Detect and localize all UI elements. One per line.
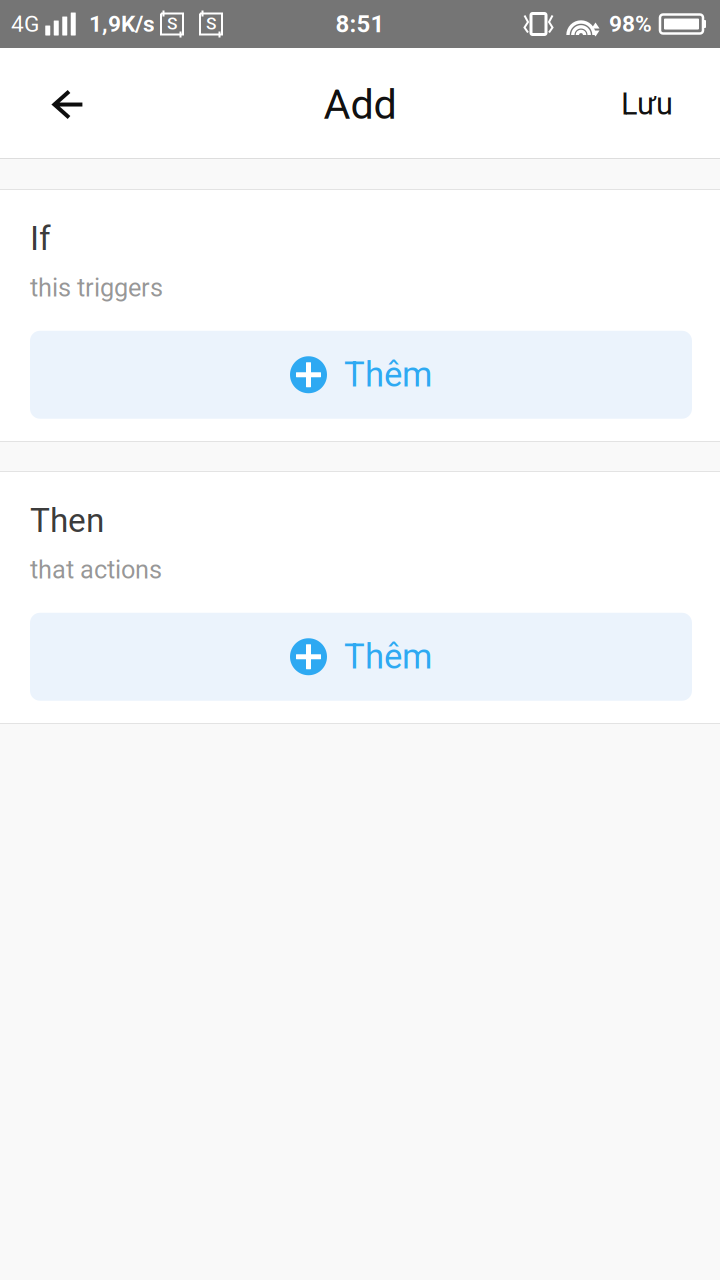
staticText: S [167, 13, 177, 34]
button[interactable]: Lưu [574, 48, 720, 158]
button[interactable]: Thêm [30, 331, 692, 419]
staticText: 4G [11, 11, 39, 37]
staticText: Thêm [344, 636, 432, 677]
staticText: S [206, 13, 216, 34]
staticText: Lưu [621, 86, 673, 122]
staticText: Add [323, 80, 396, 129]
staticText: 98% [609, 11, 652, 37]
staticText: If [30, 219, 51, 258]
staticText: Thêm [344, 354, 432, 395]
button[interactable]: Back [0, 48, 140, 158]
button[interactable]: Thêm [30, 613, 692, 701]
staticText: this triggers [30, 273, 163, 303]
staticText: that actions [30, 555, 162, 585]
staticText: 1,9K/s [89, 11, 155, 37]
staticText: Then [30, 501, 104, 540]
staticText: 8:51 [335, 10, 384, 38]
